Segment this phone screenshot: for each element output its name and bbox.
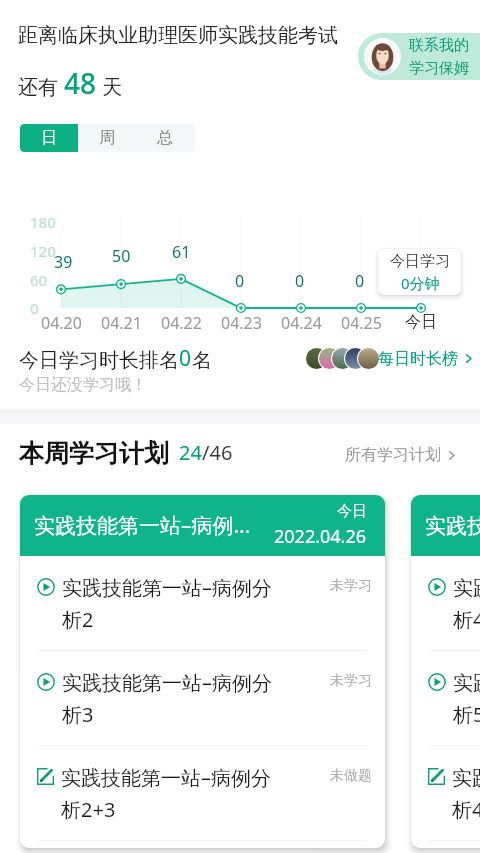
staticText: 实践技能第一站–病例分析2 — [62, 574, 277, 632]
staticText: 2022.04.26 — [274, 524, 367, 549]
staticText: 联系我的 — [409, 36, 469, 55]
staticText: 还有 — [18, 73, 64, 100]
staticText: 周 — [99, 128, 115, 148]
button[interactable]: 日 — [20, 124, 78, 152]
staticText: 0 — [355, 270, 365, 292]
staticText: 每日时长榜 — [378, 349, 458, 369]
button[interactable]: 总 — [136, 124, 194, 152]
staticText: 所有学习计划 — [345, 445, 441, 465]
staticText: 180 — [30, 212, 56, 232]
button[interactable]: Do exercise — [20, 746, 385, 840]
staticText: 120 — [30, 241, 56, 261]
staticText: 04.25 — [341, 312, 382, 334]
staticText: 0 — [30, 298, 39, 318]
staticText: 04.20 — [41, 312, 82, 334]
other: Play lesson — [37, 673, 55, 691]
staticText: 总 — [157, 128, 173, 148]
staticText: 学习保姆 — [409, 59, 469, 78]
button[interactable]: 每日时长榜 — [305, 347, 475, 370]
staticText: 实践技能第一站–病例分析2+3 — [61, 764, 276, 822]
staticText: 61 — [172, 241, 191, 263]
button[interactable]: 联系我的 — [358, 33, 480, 80]
staticText: 今日还没学习哦！ — [19, 375, 147, 395]
button[interactable]: Play lesson — [20, 651, 385, 745]
staticText: 实践技能第一站–病例… — [425, 511, 480, 540]
staticText: 天 — [97, 73, 123, 100]
button[interactable]: 所有学习计划 — [345, 445, 458, 465]
staticText: 39 — [54, 251, 73, 273]
other: Play lesson — [37, 578, 55, 596]
staticText: 50 — [112, 245, 131, 267]
staticText: 距离临床执业助理医师实践技能考试 — [18, 23, 338, 48]
staticText: 0 — [295, 270, 305, 292]
other: Play lesson — [428, 578, 446, 596]
button[interactable]: Play lesson — [411, 556, 480, 650]
staticText: 实践技能第一站–病例… — [34, 511, 251, 540]
staticText: 名 — [192, 348, 212, 373]
staticText: 实践技能第一站–病例分析5 — [453, 669, 480, 727]
staticText: 今日学习时长排名 — [19, 348, 179, 373]
staticText: 实践技能第一站–病例分析3 — [62, 669, 277, 727]
staticText: 实践技能第一站–病例分析4 — [453, 574, 480, 632]
staticText: 0 — [235, 270, 245, 292]
staticText: 未学习 — [330, 577, 372, 595]
staticText: 今日 — [405, 312, 437, 332]
staticText: 本周学习计划 — [19, 438, 169, 469]
staticText: 48 — [64, 64, 97, 102]
other: Do exercise — [428, 768, 445, 785]
staticText: 未做题 — [330, 767, 372, 785]
staticText: 今日 — [337, 502, 367, 521]
other: Play lesson — [428, 673, 446, 691]
staticText: 实践技能第一站–病例分析4+5 — [452, 764, 480, 822]
staticText: 24 — [179, 439, 202, 466]
staticText: 日 — [41, 128, 57, 148]
staticText: /46 — [202, 439, 233, 466]
button[interactable]: Play lesson — [20, 556, 385, 650]
staticText: 0分钟 — [401, 273, 440, 293]
staticText: 04.24 — [281, 312, 322, 334]
button[interactable]: 周 — [78, 124, 136, 152]
button[interactable]: Do exercise — [411, 746, 480, 840]
other: Do exercise — [37, 768, 54, 785]
staticText: 60 — [30, 270, 48, 290]
staticText: 未学习 — [330, 672, 372, 690]
button[interactable]: Play lesson — [411, 651, 480, 745]
staticText: 0 — [179, 344, 192, 373]
staticText: 04.21 — [101, 312, 142, 334]
staticText: 04.22 — [161, 312, 202, 334]
staticText: 04.23 — [221, 312, 262, 334]
staticText: 今日学习 — [390, 252, 450, 271]
